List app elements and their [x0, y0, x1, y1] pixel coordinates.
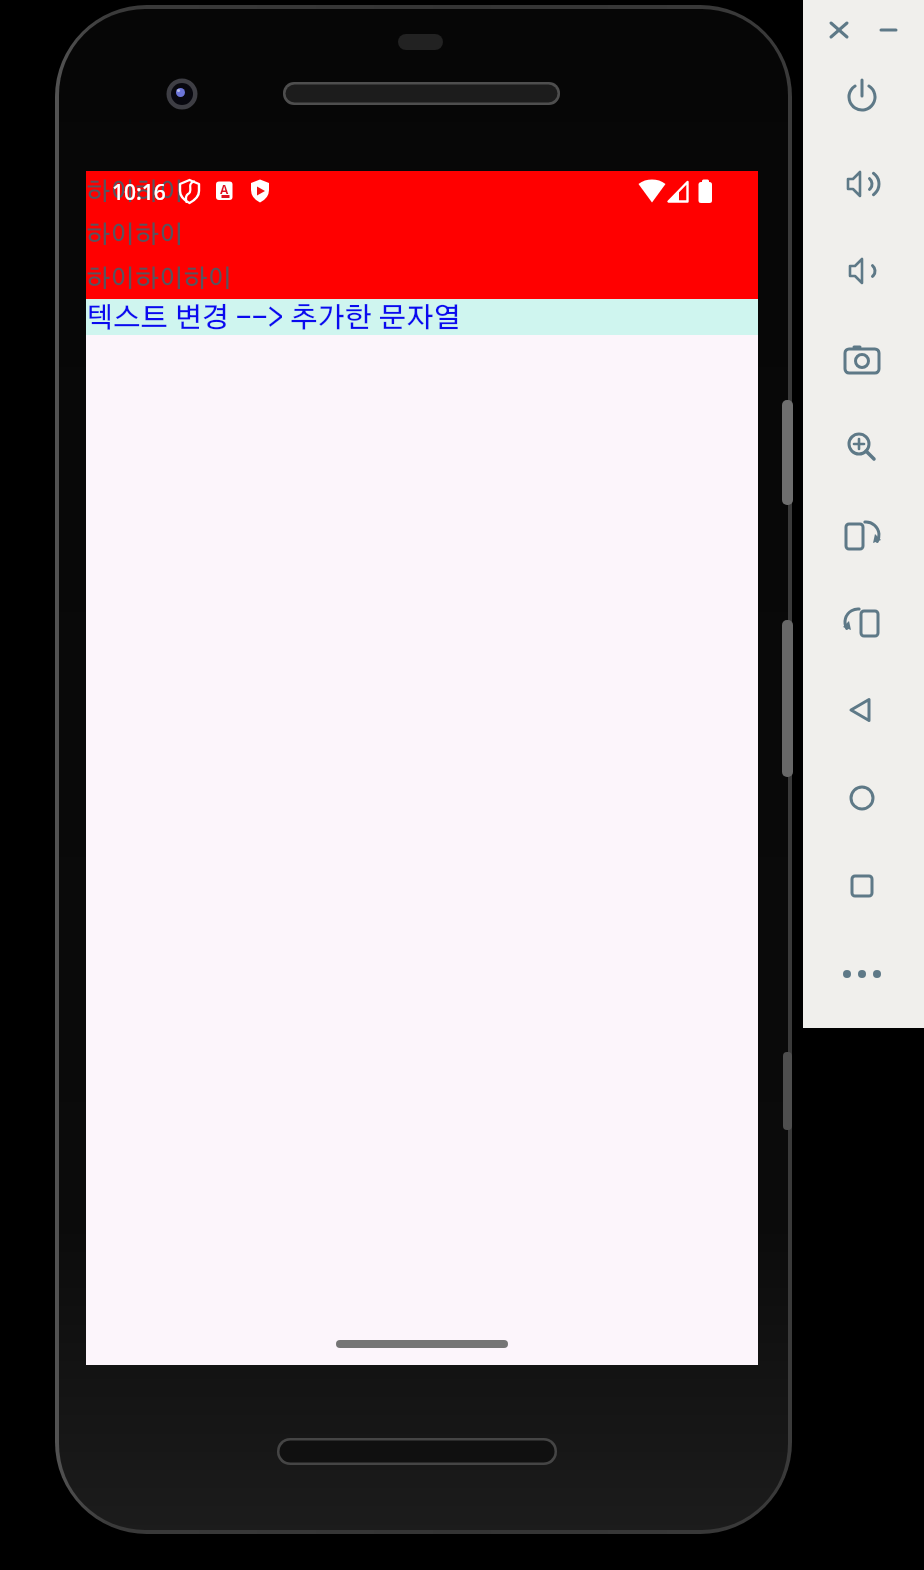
button[interactable] — [836, 158, 888, 210]
button[interactable] — [836, 860, 888, 912]
button[interactable] — [836, 684, 888, 736]
staticText: 하이하이 하이하이 하이하이하이 — [86, 180, 232, 292]
button[interactable] — [836, 509, 888, 561]
button[interactable] — [836, 772, 888, 824]
button[interactable] — [867, 10, 911, 50]
button[interactable] — [836, 421, 888, 473]
button[interactable] — [836, 948, 888, 1000]
button[interactable] — [836, 334, 888, 386]
staticText: 텍스트 변경 --> 추가한 문자열 — [86, 305, 461, 333]
button[interactable] — [815, 10, 859, 50]
button[interactable] — [86, 299, 758, 335]
staticText: A — [220, 181, 229, 197]
button[interactable] — [836, 71, 888, 123]
button[interactable] — [836, 596, 888, 648]
button[interactable] — [836, 245, 888, 297]
staticText: 10:16 — [112, 178, 166, 207]
